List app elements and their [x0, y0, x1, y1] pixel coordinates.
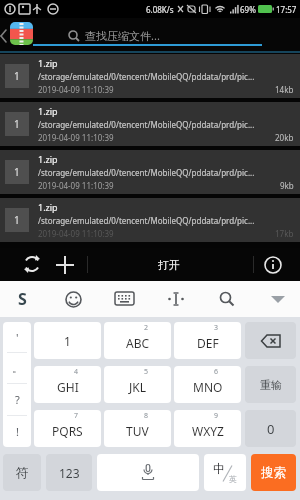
button[interactable]: 1 — [0, 150, 300, 194]
button[interactable]: S — [10, 287, 34, 311]
staticText: 7 — [74, 411, 79, 421]
button[interactable]: 1 — [0, 54, 300, 98]
staticText: 4 — [74, 367, 79, 377]
button[interactable]: 2 — [104, 322, 171, 359]
staticText: /storage/emulated/0/tencent/MobileQQ/pdd… — [38, 71, 255, 82]
button[interactable] — [264, 256, 282, 274]
staticText: 2019-04-09 11:10:39 — [38, 228, 114, 239]
staticText: 3 — [214, 323, 219, 333]
staticText: 1 — [64, 333, 71, 349]
staticText: 查找压缩文件... — [85, 28, 160, 43]
staticText: 17:57 — [276, 4, 297, 15]
staticText: /storage/emulated/0/tencent/MobileQQ/pdd… — [38, 119, 255, 130]
button[interactable]: 9 — [174, 410, 241, 447]
staticText: 1.zip — [38, 201, 58, 213]
staticText: ' — [16, 330, 19, 345]
staticText: 重输 — [260, 378, 282, 392]
button[interactable] — [245, 322, 296, 359]
staticText: 17kb — [275, 228, 294, 239]
button[interactable]: 7 — [34, 410, 101, 447]
staticText: 英 — [229, 474, 237, 484]
button[interactable]: 符 — [3, 454, 41, 491]
button[interactable] — [164, 287, 188, 311]
staticText: 搜索 — [261, 465, 286, 481]
staticText: 1.zip — [38, 105, 58, 117]
staticText: S — [18, 288, 27, 310]
button[interactable]: 1 — [0, 102, 300, 146]
button[interactable]: 1 — [0, 198, 300, 242]
staticText: ABC — [126, 335, 150, 351]
staticText: PQRS — [52, 423, 83, 439]
button[interactable]: 8 — [104, 410, 171, 447]
staticText: 20kb — [275, 132, 294, 143]
staticText: 0 — [267, 420, 275, 438]
staticText: 2019-04-09 11:10:39 — [38, 132, 114, 143]
button[interactable] — [215, 287, 239, 311]
button[interactable]: 5 — [104, 366, 171, 403]
button[interactable]: 123 — [46, 454, 92, 491]
staticText: 69% — [240, 4, 256, 15]
button[interactable] — [266, 287, 290, 311]
staticText: 中 — [213, 461, 225, 476]
button[interactable]: 重输 — [245, 366, 296, 403]
button[interactable]: 3 — [174, 322, 241, 359]
staticText: 14kb — [275, 84, 294, 95]
staticText: 9kb — [280, 180, 294, 191]
staticText: 6 — [214, 367, 219, 377]
button[interactable]: 0 — [245, 410, 296, 447]
button[interactable]: 1 — [34, 322, 101, 359]
button[interactable] — [55, 255, 75, 275]
button[interactable]: 打开 — [158, 258, 180, 272]
button[interactable]: 中 — [204, 454, 246, 491]
button[interactable] — [112, 287, 136, 311]
staticText: DEF — [197, 335, 219, 351]
staticText: 1.zip — [38, 153, 58, 165]
staticText: /storage/emulated/0/tencent/MobileQQ/pdd… — [38, 167, 255, 178]
staticText: 123 — [59, 465, 80, 481]
staticText: 1 — [14, 165, 20, 179]
staticText: 2 — [144, 323, 149, 333]
button[interactable] — [97, 454, 199, 491]
staticText: TUV — [126, 423, 149, 439]
staticText: 打开 — [158, 258, 180, 272]
staticText: 2019-04-09 11:10:39 — [38, 84, 114, 95]
staticText: ! — [16, 424, 19, 439]
staticText: JKL — [129, 379, 146, 395]
staticText: WXYZ — [192, 423, 224, 439]
staticText: MNO — [193, 379, 223, 395]
staticText: 9 — [214, 411, 219, 421]
staticText: 5 — [144, 367, 149, 377]
button[interactable] — [61, 287, 85, 311]
staticText: 符 — [16, 465, 29, 481]
button[interactable]: 6 — [174, 366, 241, 403]
button[interactable]: ? — [3, 384, 31, 415]
staticText: 6.08K/s — [146, 4, 174, 15]
staticText: /storage/emulated/0/tencent/MobileQQ/pdd… — [38, 215, 255, 226]
staticText: 8 — [144, 411, 149, 421]
staticText: 1 — [14, 213, 20, 227]
staticText: ? — [15, 392, 20, 407]
button[interactable]: ' — [3, 322, 31, 352]
button[interactable]: 搜索 — [251, 454, 296, 491]
button[interactable] — [22, 254, 44, 276]
staticText: 。 — [12, 361, 23, 375]
staticText: GHI — [57, 379, 79, 395]
button[interactable]: 4 — [34, 366, 101, 403]
staticText: 1.zip — [38, 57, 58, 69]
button[interactable]: ! — [3, 416, 31, 447]
staticText: 2019-04-09 11:10:39 — [38, 180, 114, 191]
staticText: 1 — [14, 117, 20, 131]
button[interactable]: 。 — [3, 353, 31, 383]
staticText: 1 — [14, 69, 20, 83]
